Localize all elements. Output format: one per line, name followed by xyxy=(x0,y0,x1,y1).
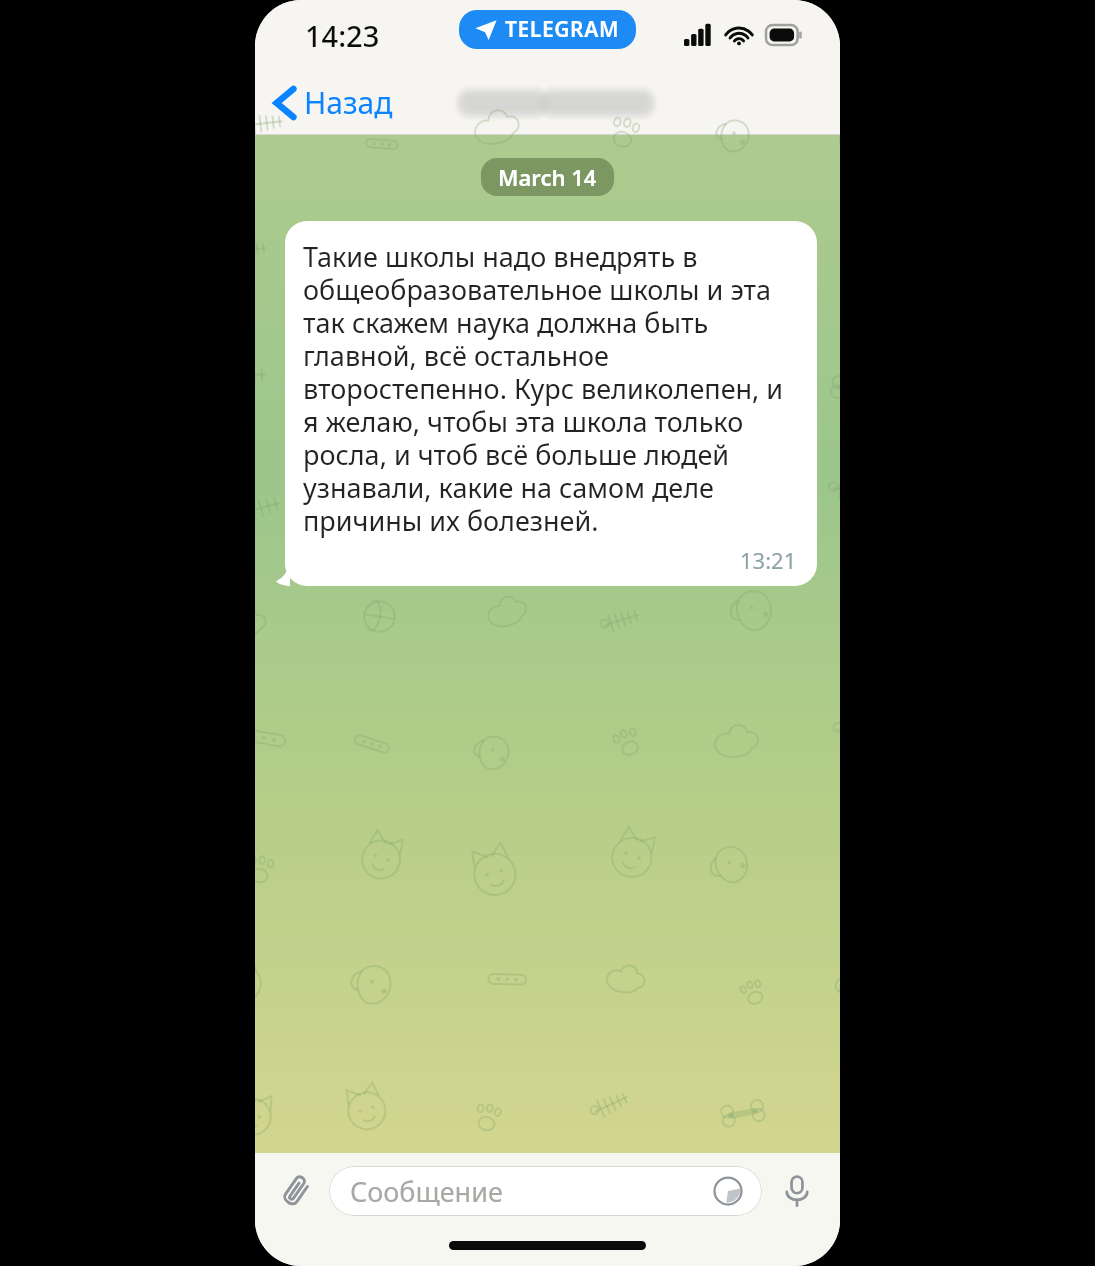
staticText: TELEGRAM xyxy=(505,15,620,44)
staticText: March 14 xyxy=(498,162,597,192)
staticText: 14:23 xyxy=(305,16,380,55)
button[interactable]: March 14 xyxy=(481,158,614,196)
staticText: Назад xyxy=(304,82,393,123)
button[interactable]: Attach file xyxy=(269,1164,323,1218)
button[interactable]: TELEGRAM xyxy=(459,10,636,49)
staticText: Сообщение xyxy=(350,1173,503,1210)
button[interactable]: Сообщение xyxy=(329,1166,762,1216)
button[interactable]: Voice message xyxy=(770,1164,824,1218)
staticText: 13:21 xyxy=(740,545,797,575)
button[interactable]: Stickers xyxy=(706,1169,750,1213)
staticText: Такие школы надо внедрять в общеобразова… xyxy=(303,238,799,539)
button[interactable]: Назад xyxy=(263,74,405,131)
button[interactable]: Такие школы надо внедрять в общеобразова… xyxy=(285,221,817,586)
